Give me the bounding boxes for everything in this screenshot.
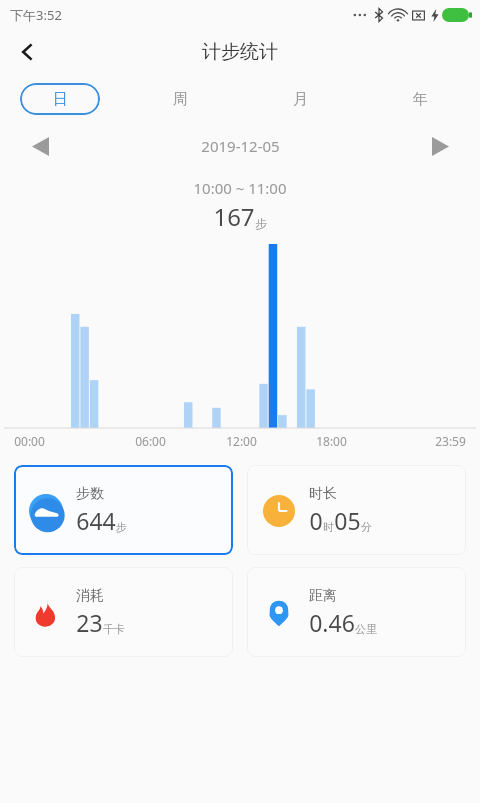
button[interactable]: 日 (20, 83, 100, 115)
staticText: 距离 (309, 587, 337, 605)
staticText: 年 (413, 90, 428, 109)
staticText: 23 (76, 607, 103, 638)
staticText: 周 (173, 90, 188, 109)
button[interactable]: 周 (140, 83, 220, 115)
staticText: 时长 (309, 485, 337, 503)
button[interactable]: 时长 (247, 465, 466, 555)
staticText: 18:00 (316, 433, 347, 449)
staticText: 千卡 (103, 622, 125, 636)
button[interactable]: 月 (260, 83, 340, 115)
staticText: 计步统计 (202, 40, 278, 64)
staticText: 时 (323, 520, 334, 534)
button[interactable]: Previous day (14, 130, 66, 162)
staticText: 0.46 (309, 607, 355, 638)
button[interactable]: 距离 (247, 567, 466, 657)
staticText: 05 (334, 505, 361, 536)
staticText: 23:59 (435, 433, 466, 449)
staticText: 644 (76, 505, 116, 536)
staticText: 2019-12-05 (201, 136, 280, 156)
staticText: 步 (255, 216, 267, 231)
staticText: 月 (293, 90, 308, 109)
button[interactable]: 年 (380, 83, 460, 115)
staticText: 12:00 (226, 433, 257, 449)
button[interactable]: 消耗 (14, 567, 233, 657)
staticText: 日 (53, 90, 68, 109)
staticText: 0 (309, 505, 323, 536)
staticText: 步数 (76, 485, 104, 503)
staticText: 06:00 (135, 433, 166, 449)
button[interactable]: Back (6, 30, 50, 74)
staticText: 公里 (355, 622, 377, 636)
staticText: 167 (213, 200, 255, 233)
staticText: 步 (116, 520, 127, 534)
staticText: 消耗 (76, 587, 104, 605)
staticText: 下午3:52 (10, 6, 62, 24)
staticText: 10:00 ~ 11:00 (193, 178, 287, 198)
button[interactable]: Next day (414, 130, 466, 162)
staticText: 分 (361, 520, 372, 534)
staticText: 00:00 (14, 433, 45, 449)
button[interactable]: 步数 (14, 465, 233, 555)
